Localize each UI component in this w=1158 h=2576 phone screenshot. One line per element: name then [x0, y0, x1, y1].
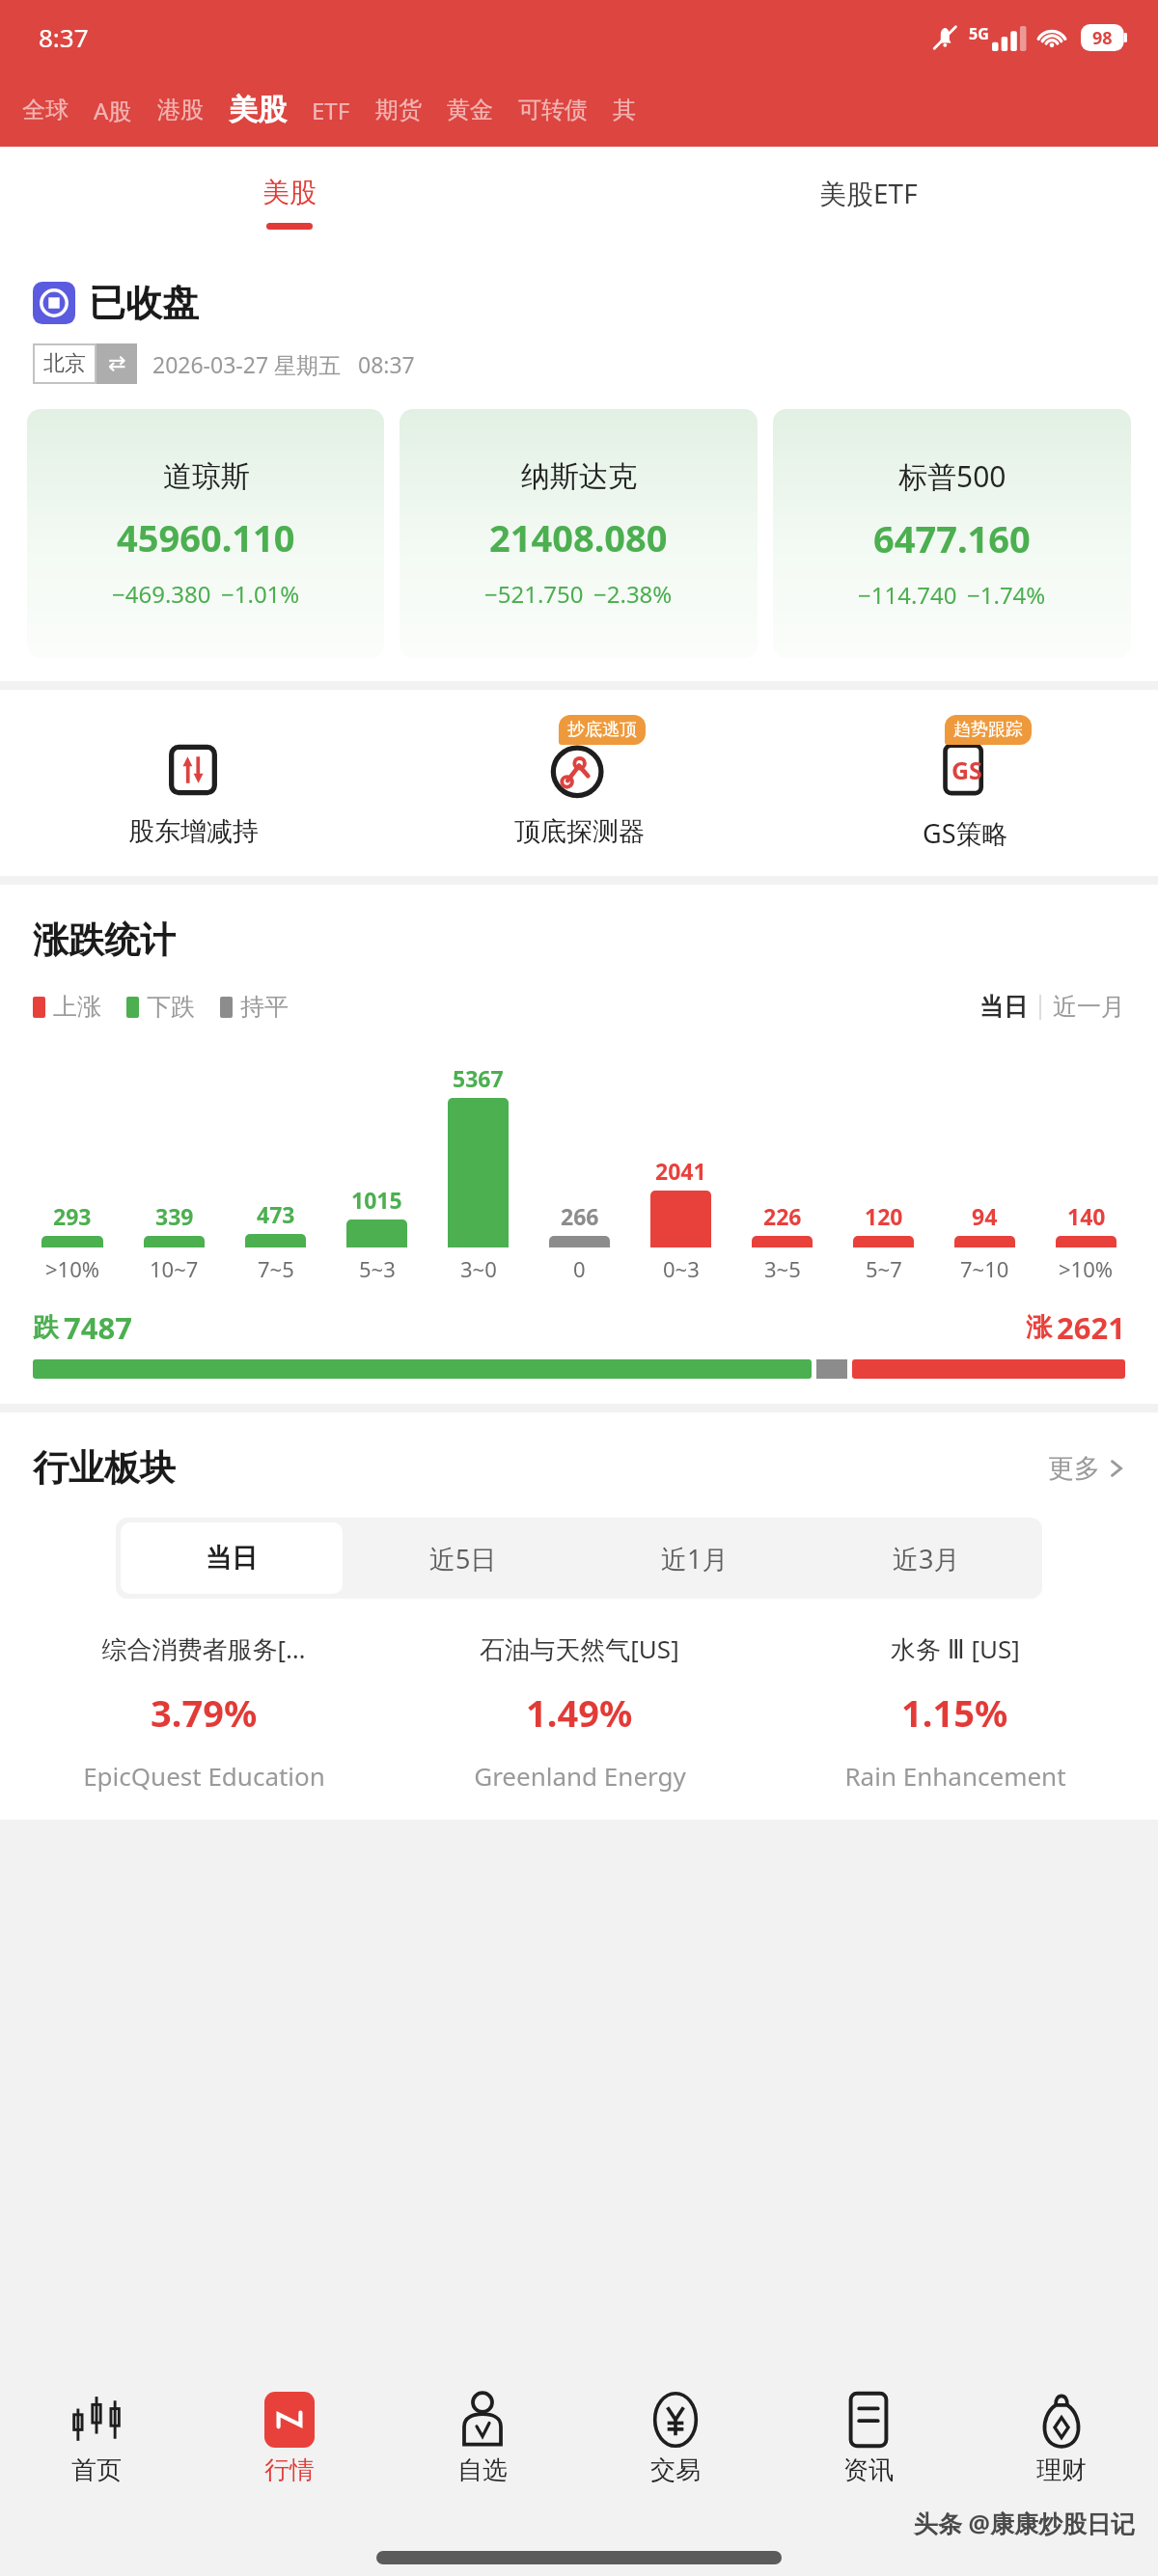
other: 行情 [264, 2392, 315, 2448]
staticText: 水务 Ⅲ [US] [891, 1631, 1020, 1666]
staticText: 涨 [1026, 1311, 1052, 1344]
staticText: −469.380 [112, 578, 211, 610]
staticText: 已收盘 [89, 280, 199, 326]
staticText: 266 [561, 1201, 599, 1231]
staticText: 2026-03-27 星期五 08:37 [152, 349, 415, 379]
other: 自选 [458, 2392, 507, 2448]
staticText: 8:37 [39, 20, 89, 54]
staticText: 其 [613, 96, 636, 124]
staticText: 当日 [979, 992, 1028, 1022]
button[interactable]: 石油与天然气[US] [392, 1631, 767, 1793]
button[interactable]: 其 [600, 96, 648, 124]
staticText: ⇄ [108, 351, 126, 376]
button[interactable]: 黄金 [434, 96, 506, 124]
staticText: 黄金 [447, 96, 493, 124]
button[interactable]: A股 [81, 95, 145, 126]
staticText: 近一月 [1053, 992, 1125, 1022]
staticText: 资讯 [843, 2454, 894, 2486]
staticText: −2.38% [593, 578, 673, 610]
staticText: 头条 @康康炒股日记 [914, 2507, 1135, 2539]
staticText: >10% [1059, 1254, 1114, 1283]
button[interactable]: 美股 [216, 92, 299, 128]
staticText: 3.79% [151, 1687, 258, 1738]
staticText: 1015 [351, 1185, 402, 1215]
staticText: 120 [865, 1201, 903, 1231]
staticText: GS [951, 754, 982, 786]
other: 理财 [1037, 2392, 1086, 2448]
staticText: 顶底探测器 [514, 815, 645, 848]
button[interactable]: 抄底逃顶 [386, 715, 772, 848]
button[interactable]: 北京 [33, 343, 137, 384]
staticText: 理财 [1036, 2454, 1087, 2486]
button[interactable]: GS [772, 715, 1158, 851]
staticText: >10% [45, 1254, 100, 1283]
staticText: 近3月 [893, 1541, 960, 1576]
button[interactable]: 交易 [579, 2370, 772, 2507]
button[interactable]: 综合消费者服务[… [15, 1631, 392, 1793]
staticText: 北京 [43, 350, 86, 377]
staticText: 2041 [655, 1156, 706, 1186]
staticText: 10~7 [150, 1254, 199, 1283]
staticText: 持平 [240, 992, 289, 1022]
staticText: 5G [969, 23, 989, 44]
button[interactable]: 港股 [145, 96, 216, 124]
button[interactable]: 可转债 [506, 96, 600, 124]
staticText: 近1月 [661, 1541, 729, 1576]
button[interactable]: 纳斯达克 [400, 409, 758, 658]
button[interactable]: 资讯 [772, 2370, 965, 2507]
staticText: 首页 [71, 2454, 122, 2486]
button[interactable]: 近1月 [584, 1522, 806, 1594]
button[interactable]: 股东增减持 [0, 715, 386, 848]
staticText: 可转债 [518, 96, 588, 124]
staticText: 近5日 [429, 1541, 497, 1576]
button[interactable]: 自选 [386, 2370, 579, 2507]
button[interactable]: 期货 [363, 96, 434, 124]
button[interactable]: 当日 [979, 992, 1028, 1022]
button[interactable]: 标普500 [773, 409, 1131, 658]
staticText: 3~5 [764, 1254, 801, 1283]
staticText: 0 [573, 1254, 586, 1283]
staticText: 7~5 [258, 1254, 294, 1283]
staticText: 3~0 [460, 1254, 497, 1283]
staticText: A股 [94, 95, 132, 126]
button[interactable]: 全球 [10, 96, 81, 124]
staticText: 跌 [33, 1311, 59, 1344]
staticText: 美股ETF [819, 175, 918, 211]
staticText: −1.01% [221, 578, 300, 610]
button[interactable]: 道琼斯 [27, 409, 384, 658]
staticText: 226 [763, 1201, 802, 1231]
staticText: 抄底逃顶 [567, 719, 637, 741]
staticText: −1.74% [967, 579, 1046, 611]
button[interactable]: 水务 Ⅲ [US] [767, 1631, 1143, 1793]
button[interactable]: 美股ETF [579, 147, 1158, 259]
button[interactable]: 美股 [0, 147, 579, 259]
staticText: Rain Enhancement [844, 1759, 1066, 1793]
staticText: 道琼斯 [163, 458, 250, 495]
staticText: −521.750 [484, 578, 584, 610]
button[interactable]: 近5日 [352, 1522, 574, 1594]
button[interactable]: 行情 [193, 2370, 386, 2507]
button[interactable]: 更多 [1048, 1452, 1125, 1485]
button[interactable]: 当日 [121, 1522, 343, 1594]
staticText: 293 [53, 1201, 92, 1231]
staticText: 美股 [262, 176, 317, 209]
button[interactable]: 理财 [965, 2370, 1158, 2507]
staticText: 期货 [375, 96, 422, 124]
staticText: 0~3 [663, 1254, 700, 1283]
staticText: 1.49% [526, 1687, 633, 1738]
other: 交易 [650, 2392, 701, 2448]
button[interactable]: 近一月 [1053, 992, 1125, 1022]
staticText: 趋势跟踪 [953, 719, 1023, 741]
staticText: 5~7 [866, 1254, 902, 1283]
button[interactable]: 近3月 [815, 1522, 1037, 1594]
staticText: GS策略 [923, 815, 1008, 851]
staticText: 94 [972, 1201, 998, 1231]
button[interactable]: 首页 [0, 2370, 193, 2507]
staticText: 1.15% [901, 1687, 1008, 1738]
staticText: 美股 [229, 92, 287, 128]
staticText: 473 [257, 1199, 295, 1229]
staticText: 98 [1092, 26, 1113, 50]
staticText: 港股 [157, 96, 204, 124]
button[interactable]: ETF [299, 95, 363, 126]
staticText: 标普500 [898, 456, 1006, 496]
